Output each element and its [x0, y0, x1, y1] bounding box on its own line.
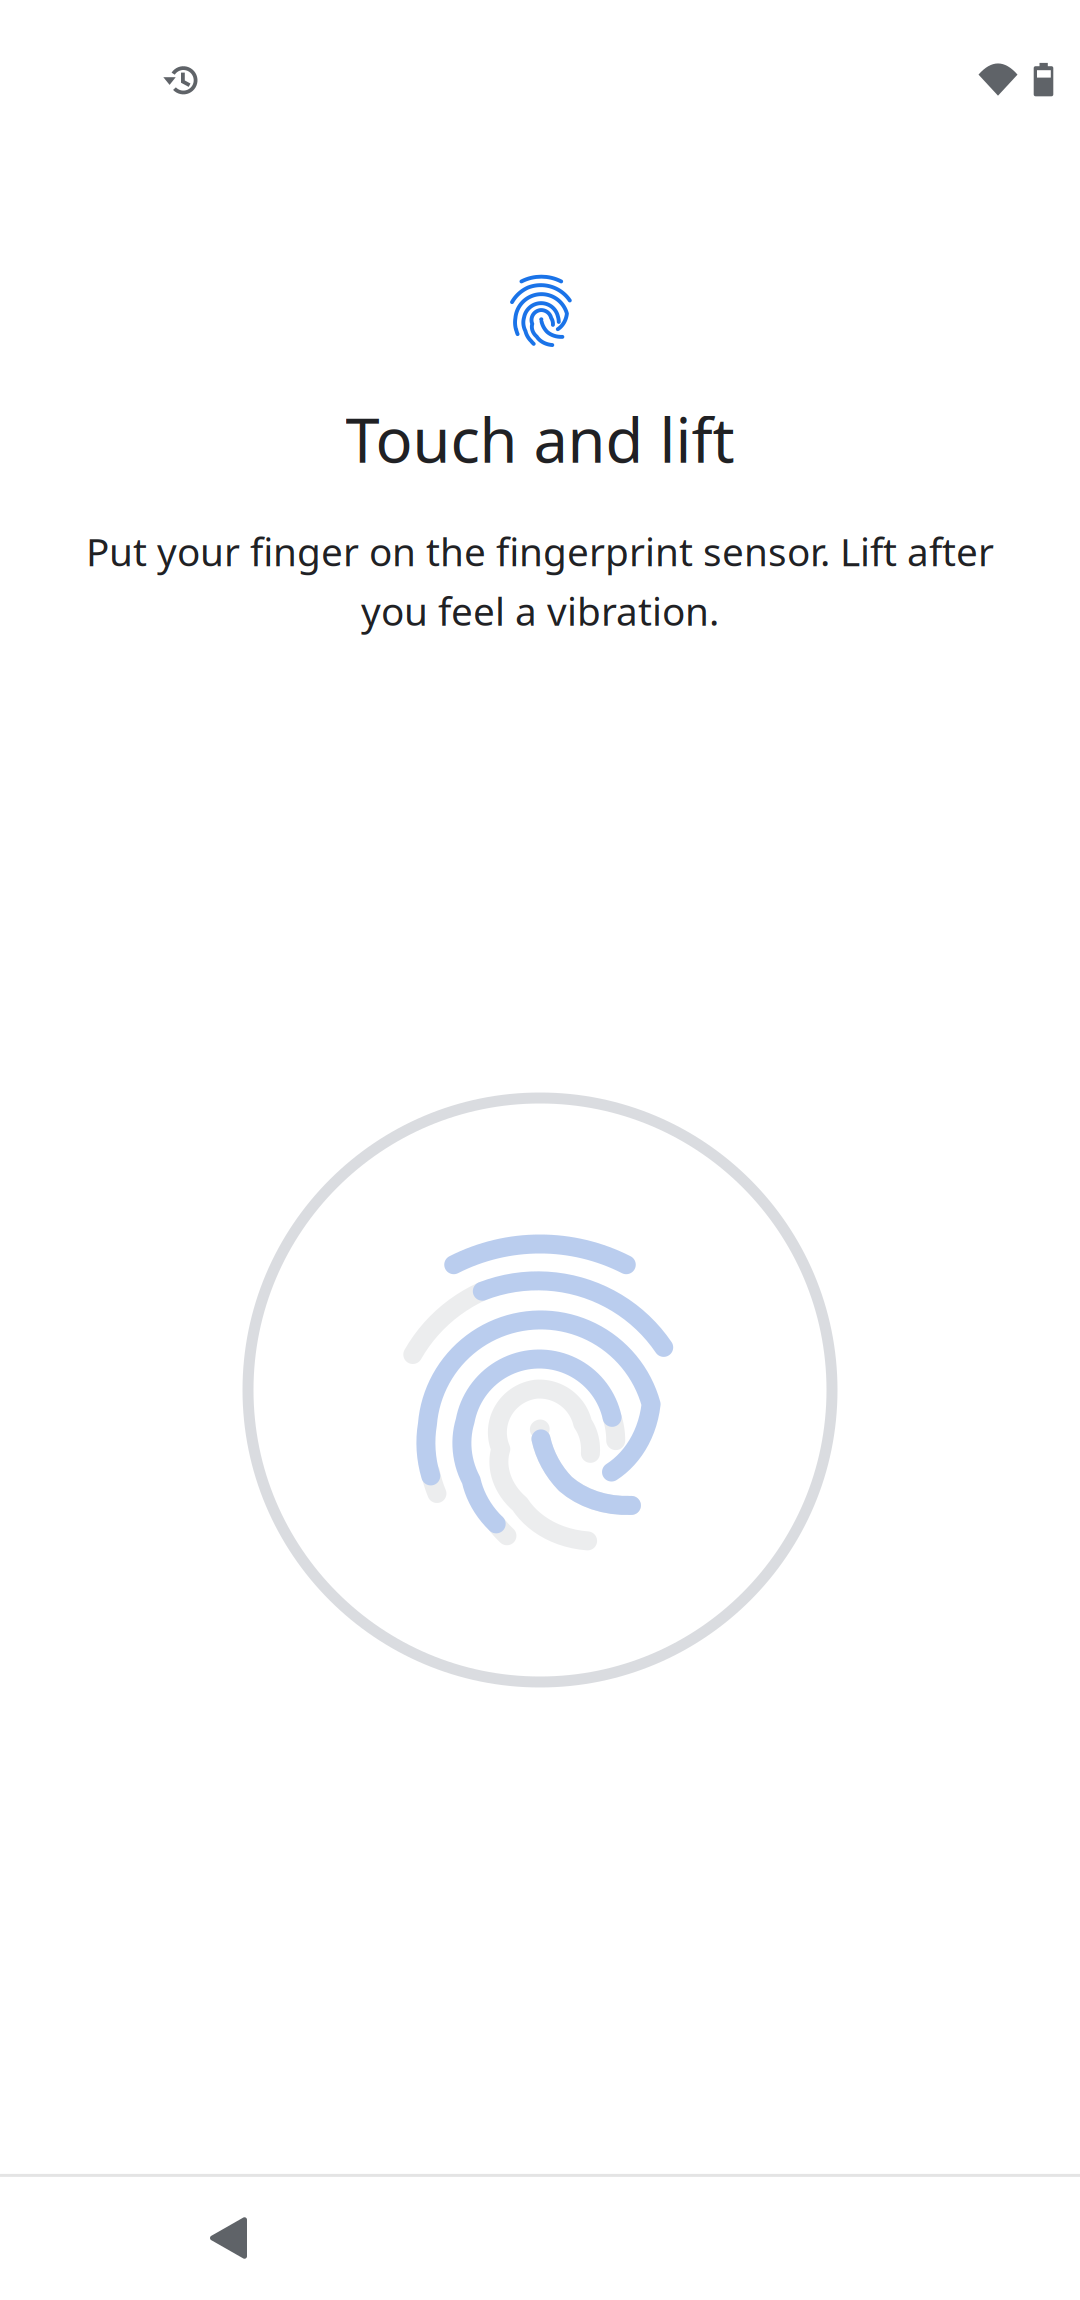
button[interactable]: Back: [158, 2179, 298, 2297]
staticText: Touch and lift: [345, 398, 734, 480]
staticText: Put your finger on the fingerprint senso…: [86, 526, 994, 577]
staticText: you feel a vibration.: [361, 585, 719, 636]
